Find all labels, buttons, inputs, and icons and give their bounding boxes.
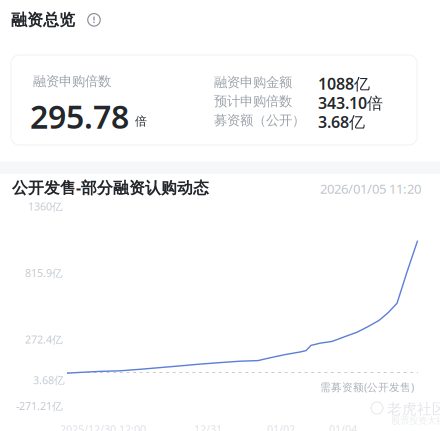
staticText: 2025/12/30 12:00 — [60, 422, 146, 431]
staticText: 募资额（公开） — [214, 112, 305, 129]
staticText: 343.10倍 — [318, 92, 383, 113]
staticText: 1088亿 — [318, 73, 370, 94]
staticText: 295.78 — [30, 95, 129, 137]
staticText: 融资申购金额 — [214, 74, 292, 90]
staticText: 01/04 — [329, 422, 357, 431]
staticText: 272.4亿 — [25, 332, 63, 346]
staticText: 815.9亿 — [25, 266, 63, 280]
staticText: 融资申购倍数 — [33, 73, 111, 89]
staticText: 2026/01/05 11:20 — [320, 180, 421, 197]
staticText: 公开发售-部分融资认购动态 — [12, 177, 209, 198]
button[interactable]: 融资总览说明 — [85, 11, 103, 29]
staticText: 需募资额(公开发售) — [320, 380, 414, 394]
staticText: 预计申购倍数 — [214, 93, 292, 109]
staticText: 3.68亿 — [33, 373, 65, 387]
staticText: 12/31 — [194, 422, 222, 431]
staticText: 股票投资大社区 — [391, 415, 440, 426]
staticText: 1360亿 — [28, 199, 63, 213]
staticText: 3.68亿 — [318, 111, 365, 132]
staticText: 老虎社区 — [387, 400, 440, 418]
staticText: 融资总览 — [11, 10, 75, 30]
staticText: 01/02 — [267, 422, 295, 431]
staticText: -271.21亿 — [16, 399, 63, 413]
staticText: 倍 — [135, 114, 147, 129]
